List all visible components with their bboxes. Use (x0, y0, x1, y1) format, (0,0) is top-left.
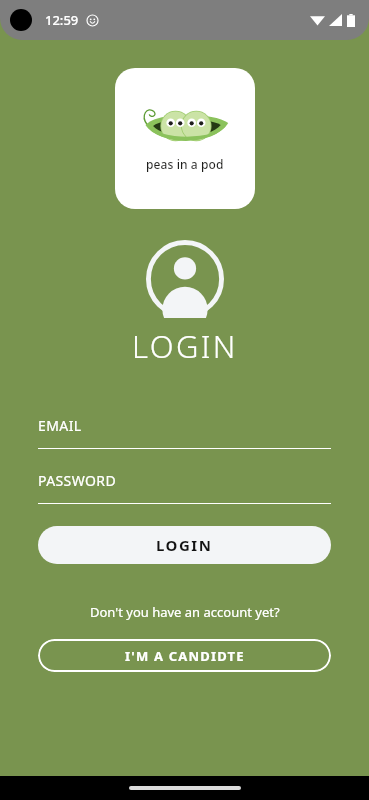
other: Account (146, 240, 224, 318)
button[interactable]: Don't you have an account yet? (86, 601, 284, 623)
staticText: EMAIL (38, 416, 82, 435)
button[interactable]: PASSWORD (38, 471, 331, 504)
staticText: 12:59 (45, 11, 79, 29)
button[interactable]: I'M A CANDIDTE (38, 639, 331, 672)
staticText: LOGIN (156, 535, 213, 555)
staticText: PASSWORD (38, 471, 117, 490)
button[interactable]: LOGIN (38, 526, 331, 564)
button[interactable]: peas in a pod (115, 68, 255, 209)
staticText: Don't you have an account yet? (90, 603, 280, 621)
staticText: I'M A CANDIDTE (125, 647, 245, 665)
button[interactable]: EMAIL (38, 416, 331, 449)
staticText: peas in a pod (146, 156, 224, 172)
staticText: LOGIN (132, 325, 238, 367)
